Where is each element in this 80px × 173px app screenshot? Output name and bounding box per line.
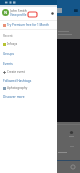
staticText: Groups xyxy=(3,52,14,56)
button[interactable]: Discover more xyxy=(0,94,57,99)
button[interactable]: Infosys xyxy=(0,41,57,47)
staticText: Followed Hashtags xyxy=(3,79,32,83)
button[interactable]: N xyxy=(0,7,57,18)
staticText: John Smith xyxy=(10,8,27,12)
staticText: Try Premium free for 1 Month xyxy=(7,23,49,27)
button[interactable]: Try Premium free for 1 Month xyxy=(0,21,57,29)
button[interactable]: Create event xyxy=(0,69,57,75)
staticText: Discover more xyxy=(3,95,25,99)
staticText: Events xyxy=(3,62,13,66)
button[interactable]: Followed Hashtags xyxy=(0,78,57,83)
staticText: Recent xyxy=(3,34,13,38)
staticText: N xyxy=(4,10,8,16)
staticText: Create event xyxy=(7,70,25,74)
button[interactable]: #photography xyxy=(0,85,57,91)
button[interactable]: Groups xyxy=(0,51,57,56)
staticText: #photography xyxy=(7,86,28,90)
staticText: View profile xyxy=(10,13,27,17)
button[interactable]: Events xyxy=(0,61,57,66)
button[interactable]: Settings xyxy=(49,10,55,16)
staticText: Infosys xyxy=(7,42,18,46)
